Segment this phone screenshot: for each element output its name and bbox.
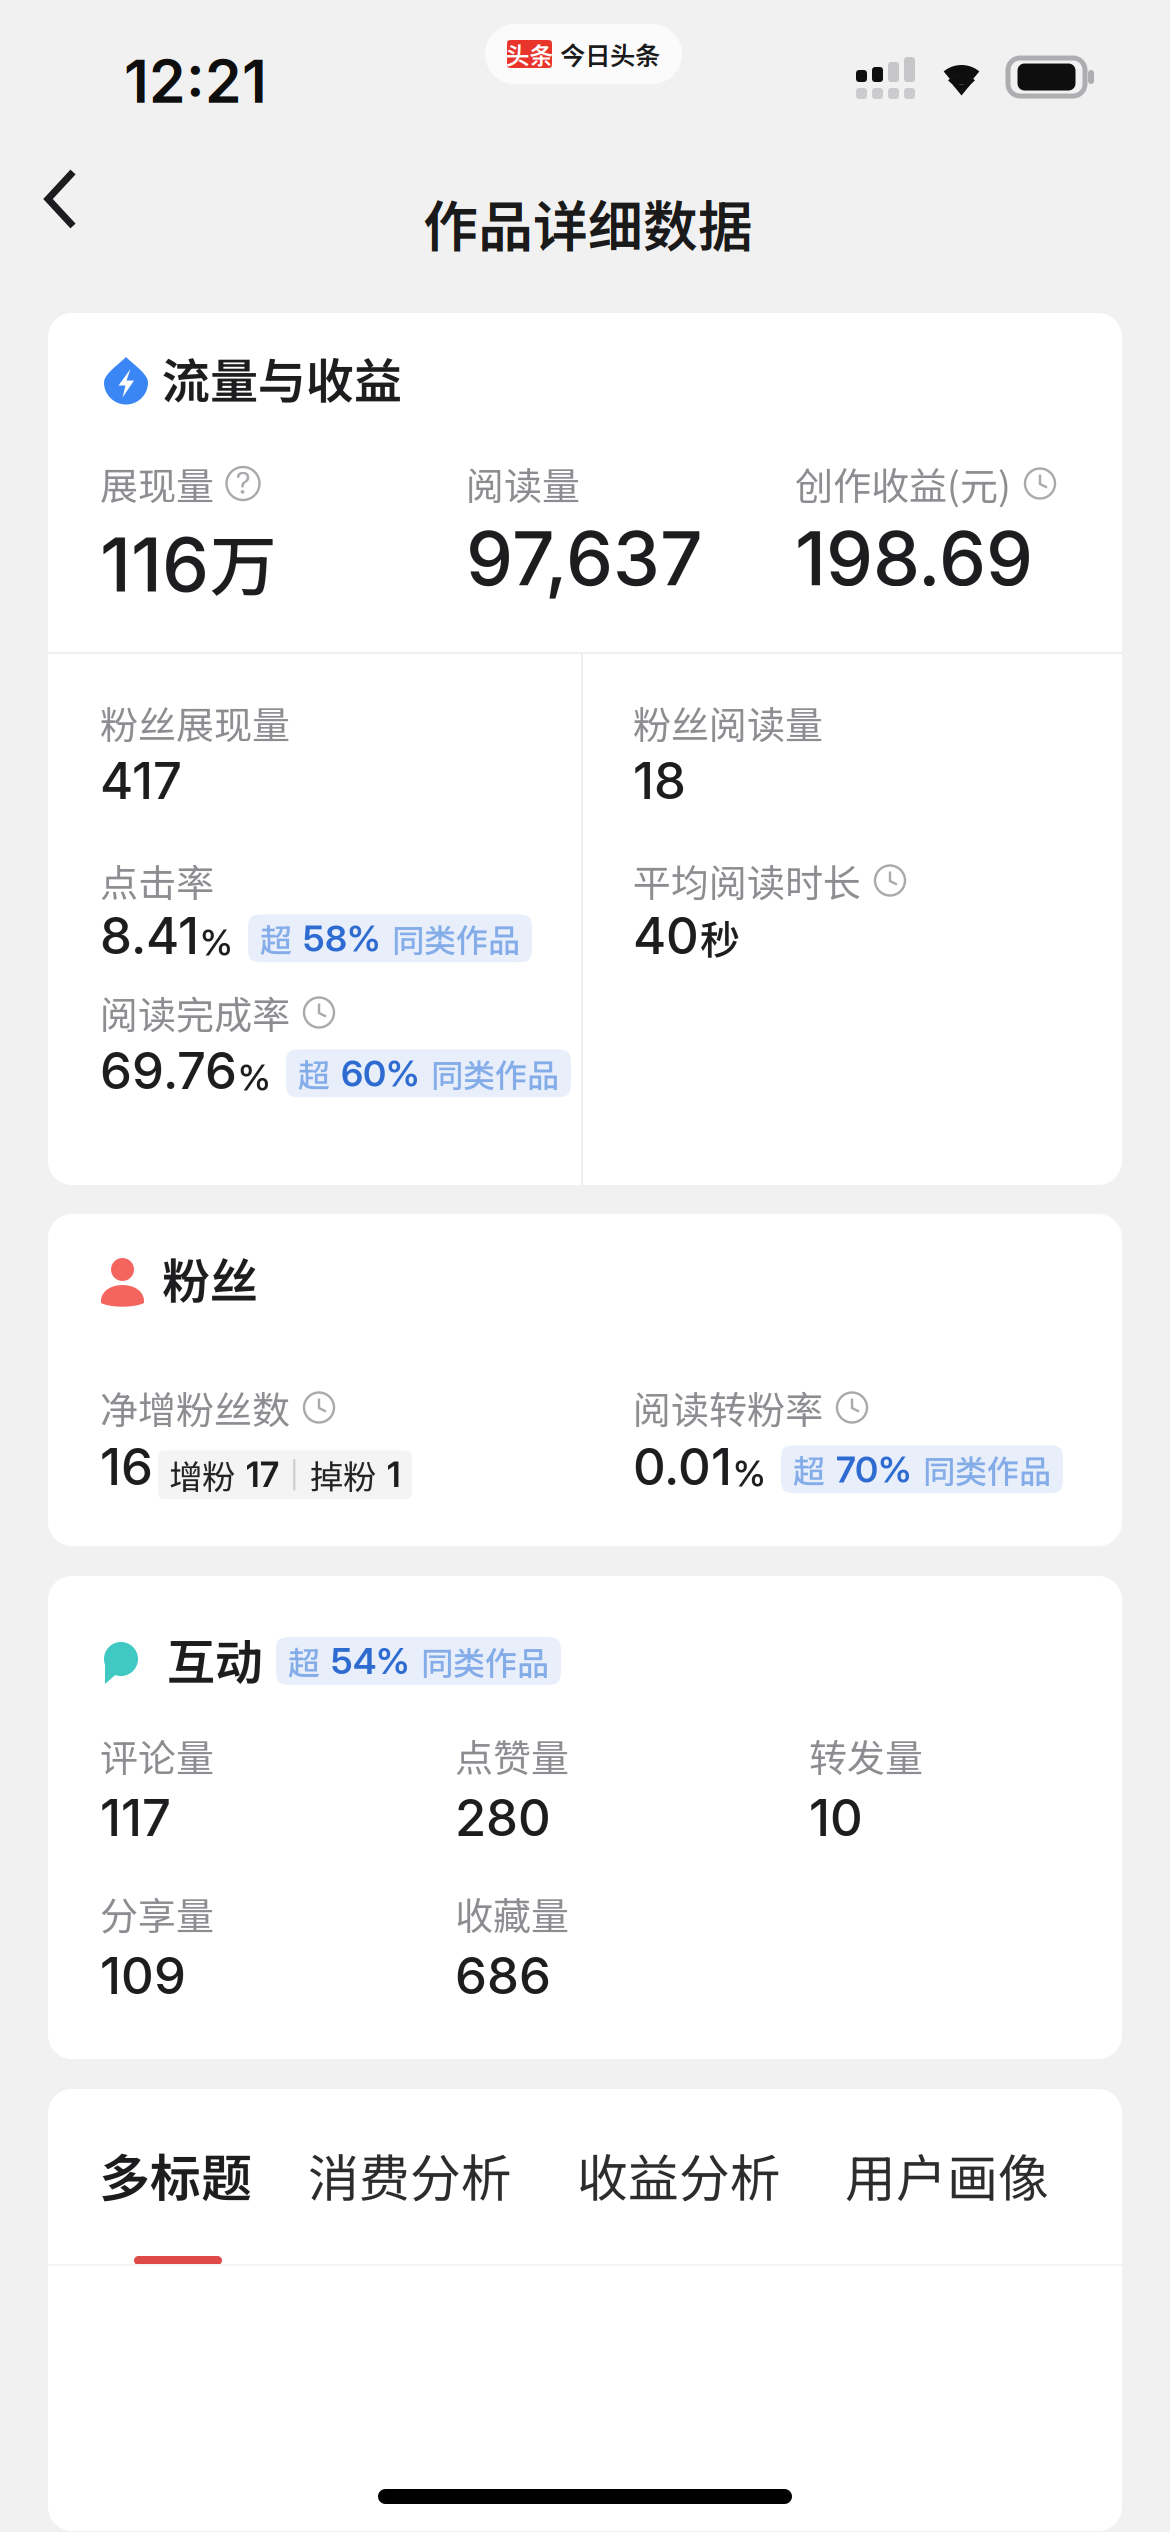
staticText: 收益分析	[577, 2138, 781, 2211]
staticText: 超	[288, 1638, 320, 1684]
staticText: 17	[246, 1454, 279, 1496]
staticText: 54%	[331, 1639, 410, 1683]
button[interactable]: 消费分析	[294, 2118, 526, 2231]
staticText: 58%	[303, 916, 381, 960]
staticText: 0.01	[633, 1436, 732, 1497]
staticText: 流量与收益	[162, 343, 402, 412]
staticText: 净增粉丝数	[100, 1380, 290, 1435]
staticText: 同类作品	[421, 1638, 549, 1684]
staticText: 117	[100, 1787, 171, 1848]
staticText: 用户画像	[845, 2138, 1049, 2211]
staticText: 16	[100, 1436, 153, 1497]
staticText: 12:21	[124, 46, 267, 117]
staticText: 686	[455, 1945, 551, 2006]
staticText: 10	[809, 1787, 863, 1848]
staticText: 超	[260, 915, 292, 961]
staticText: 阅读转粉率	[633, 1380, 823, 1435]
staticText: 超	[298, 1050, 330, 1096]
staticText: 同类作品	[923, 1446, 1051, 1492]
staticText: 阅读量	[466, 456, 580, 511]
staticText: 40	[633, 905, 699, 966]
staticText: 分享量	[100, 1886, 214, 1941]
staticText: %	[200, 921, 233, 964]
staticText: 创作收益(元)	[795, 456, 1011, 511]
staticText: 70%	[836, 1447, 912, 1491]
staticText: 1	[387, 1454, 401, 1496]
staticText: 8.41	[100, 905, 199, 966]
staticText: 掉粉	[310, 1451, 376, 1499]
staticText: 头条	[505, 37, 553, 71]
staticText: 转发量	[809, 1728, 923, 1783]
staticText: 收藏量	[455, 1886, 569, 1941]
staticText: 280	[455, 1787, 551, 1848]
staticText: 粉丝	[162, 1243, 258, 1312]
staticText: 粉丝展现量	[100, 695, 290, 750]
staticText: 评论量	[100, 1728, 214, 1783]
staticText: |	[290, 1459, 299, 1491]
staticText: 超	[793, 1446, 825, 1492]
staticText: 60%	[341, 1051, 420, 1095]
button[interactable]: 用户画像	[831, 2118, 1063, 2231]
staticText: 阅读完成率	[100, 985, 290, 1040]
staticText: 198.69	[795, 513, 1033, 603]
staticText: 秒	[700, 908, 740, 966]
staticText: 增粉	[169, 1451, 235, 1499]
staticText: 点赞量	[455, 1728, 569, 1783]
staticText: %	[238, 1056, 271, 1099]
staticText: 展现量	[100, 456, 214, 511]
staticText: 109	[100, 1945, 186, 2006]
staticText: 18	[633, 750, 686, 811]
staticText: %	[733, 1452, 766, 1495]
staticText: 同类作品	[431, 1050, 559, 1096]
staticText: 116	[100, 519, 209, 609]
staticText: 互动	[167, 1624, 263, 1693]
staticText: 万	[210, 513, 277, 609]
staticText: 69.76	[100, 1040, 237, 1101]
staticText: 今日头条	[560, 36, 660, 72]
staticText: 同类作品	[392, 915, 520, 961]
staticText: 点击率	[100, 853, 214, 908]
button[interactable]: 多标题	[85, 2118, 266, 2231]
staticText: 多标题	[99, 2138, 252, 2211]
staticText: 97,637	[466, 513, 703, 603]
staticText: 消费分析	[308, 2138, 512, 2211]
button[interactable]: 返回	[0, 124, 131, 274]
staticText: 作品详细数据	[423, 183, 753, 262]
staticText: 粉丝阅读量	[633, 695, 823, 750]
staticText: 417	[100, 750, 182, 811]
button[interactable]: 收益分析	[563, 2118, 795, 2231]
staticText: 平均阅读时长	[633, 853, 861, 908]
staticText: ?	[235, 465, 250, 501]
